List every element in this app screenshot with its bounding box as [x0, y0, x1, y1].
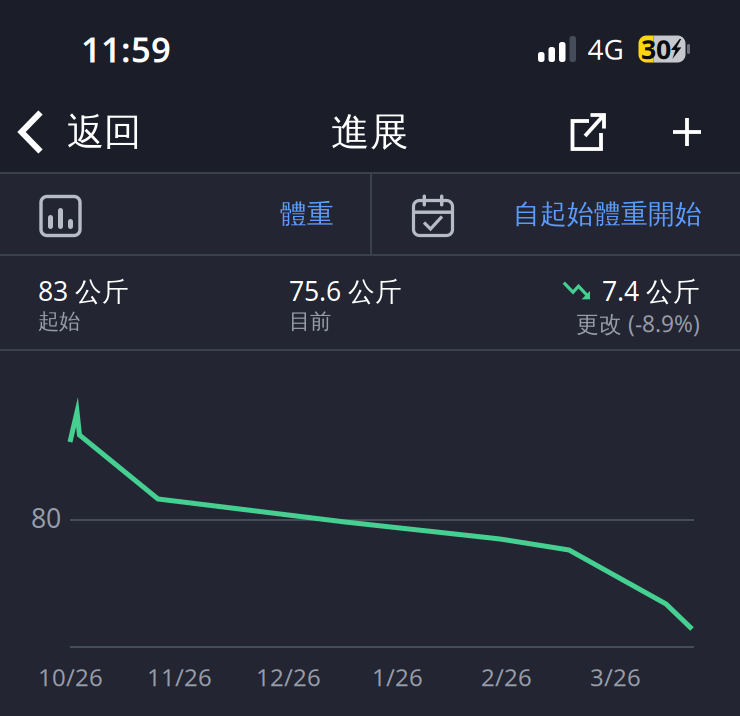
button[interactable]: Share — [560, 104, 616, 160]
button[interactable]: 體重 — [0, 174, 370, 254]
staticText: 體重 — [280, 198, 334, 230]
staticText: 7.4 公斤 — [602, 273, 700, 308]
staticText: 83 公斤 — [38, 273, 129, 308]
staticText: 進展 — [331, 108, 409, 156]
staticText: 11:59 — [81, 26, 171, 72]
staticText: 2/26 — [481, 661, 532, 693]
staticText: 80 — [31, 500, 61, 535]
staticText: 3/26 — [590, 661, 641, 693]
button[interactable]: Add — [661, 108, 713, 156]
staticText: 12/26 — [256, 661, 321, 693]
staticText: 目前 — [289, 308, 331, 335]
staticText: 10/26 — [38, 661, 103, 693]
staticText: 自起始體重開始 — [513, 198, 702, 230]
staticText: 起始 — [38, 308, 80, 335]
button[interactable]: 自起始體重開始 — [372, 174, 740, 254]
button[interactable]: 返回 — [0, 99, 141, 165]
staticText: 1/26 — [372, 661, 423, 693]
staticText: 4G — [587, 30, 623, 68]
staticText: 11/26 — [147, 661, 212, 693]
staticText: 30 — [641, 31, 671, 67]
staticText: 返回 — [67, 109, 141, 155]
staticText: 更改 (-8.9%) — [576, 308, 700, 338]
staticText: 75.6 公斤 — [289, 273, 402, 308]
